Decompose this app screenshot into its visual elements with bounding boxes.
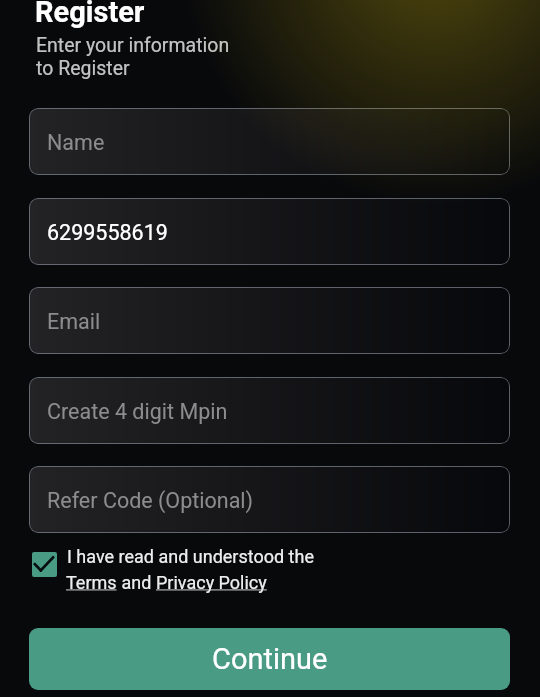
staticText: and xyxy=(117,572,156,593)
button[interactable]: Email xyxy=(29,287,510,354)
staticText: Create 4 digit Mpin xyxy=(47,399,228,424)
staticText: 6299558619 xyxy=(47,220,168,245)
staticText: Enter your information to Register xyxy=(36,34,230,80)
button[interactable]: Terms xyxy=(66,572,117,593)
staticText: Name xyxy=(47,130,105,155)
button[interactable]: Privacy Policy xyxy=(156,572,267,593)
button[interactable]: Accept terms and privacy policy xyxy=(32,552,57,577)
staticText: Refer Code (Optional) xyxy=(47,488,254,513)
button[interactable]: Refer Code (Optional) xyxy=(29,466,510,533)
staticText: Register xyxy=(35,0,145,29)
button[interactable]: Continue xyxy=(29,628,510,690)
staticText: Continue xyxy=(212,642,328,676)
staticText: Email xyxy=(47,309,101,334)
staticText: I have read and understood the xyxy=(67,546,314,567)
button[interactable]: 6299558619 xyxy=(29,198,510,265)
button[interactable]: Name xyxy=(29,108,510,175)
button[interactable]: Create 4 digit Mpin xyxy=(29,377,510,444)
